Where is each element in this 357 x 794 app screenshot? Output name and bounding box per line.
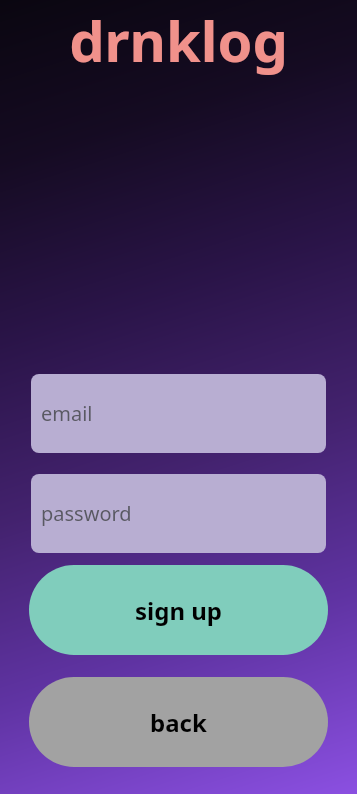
staticText: password [41,500,132,527]
button[interactable]: email [31,374,326,453]
button[interactable]: sign up [29,565,328,655]
staticText: sign up [135,594,222,627]
button[interactable]: password [31,474,326,553]
staticText: back [150,706,207,739]
button[interactable]: back [29,677,328,767]
staticText: drnklog [0,2,357,78]
staticText: email [41,400,93,427]
